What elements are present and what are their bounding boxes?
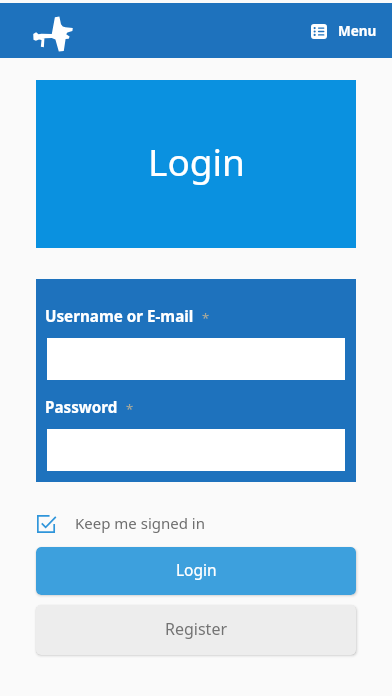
button[interactable]: Home [33,16,73,52]
button[interactable]: Menu [304,15,384,47]
button[interactable]: Keep me signed in [30,506,215,540]
button[interactable]: Register [36,605,356,655]
button[interactable]: Login [36,547,356,595]
staticText: Keep me signed in [75,513,205,533]
staticText: Username or E-mail [45,306,194,327]
staticText: Register [165,618,228,640]
staticText: * [202,309,210,327]
staticText: Password [45,397,118,418]
staticText: Login [176,559,217,580]
staticText: Menu [338,22,377,40]
staticText: * [126,400,134,418]
staticText: Login [148,136,245,186]
